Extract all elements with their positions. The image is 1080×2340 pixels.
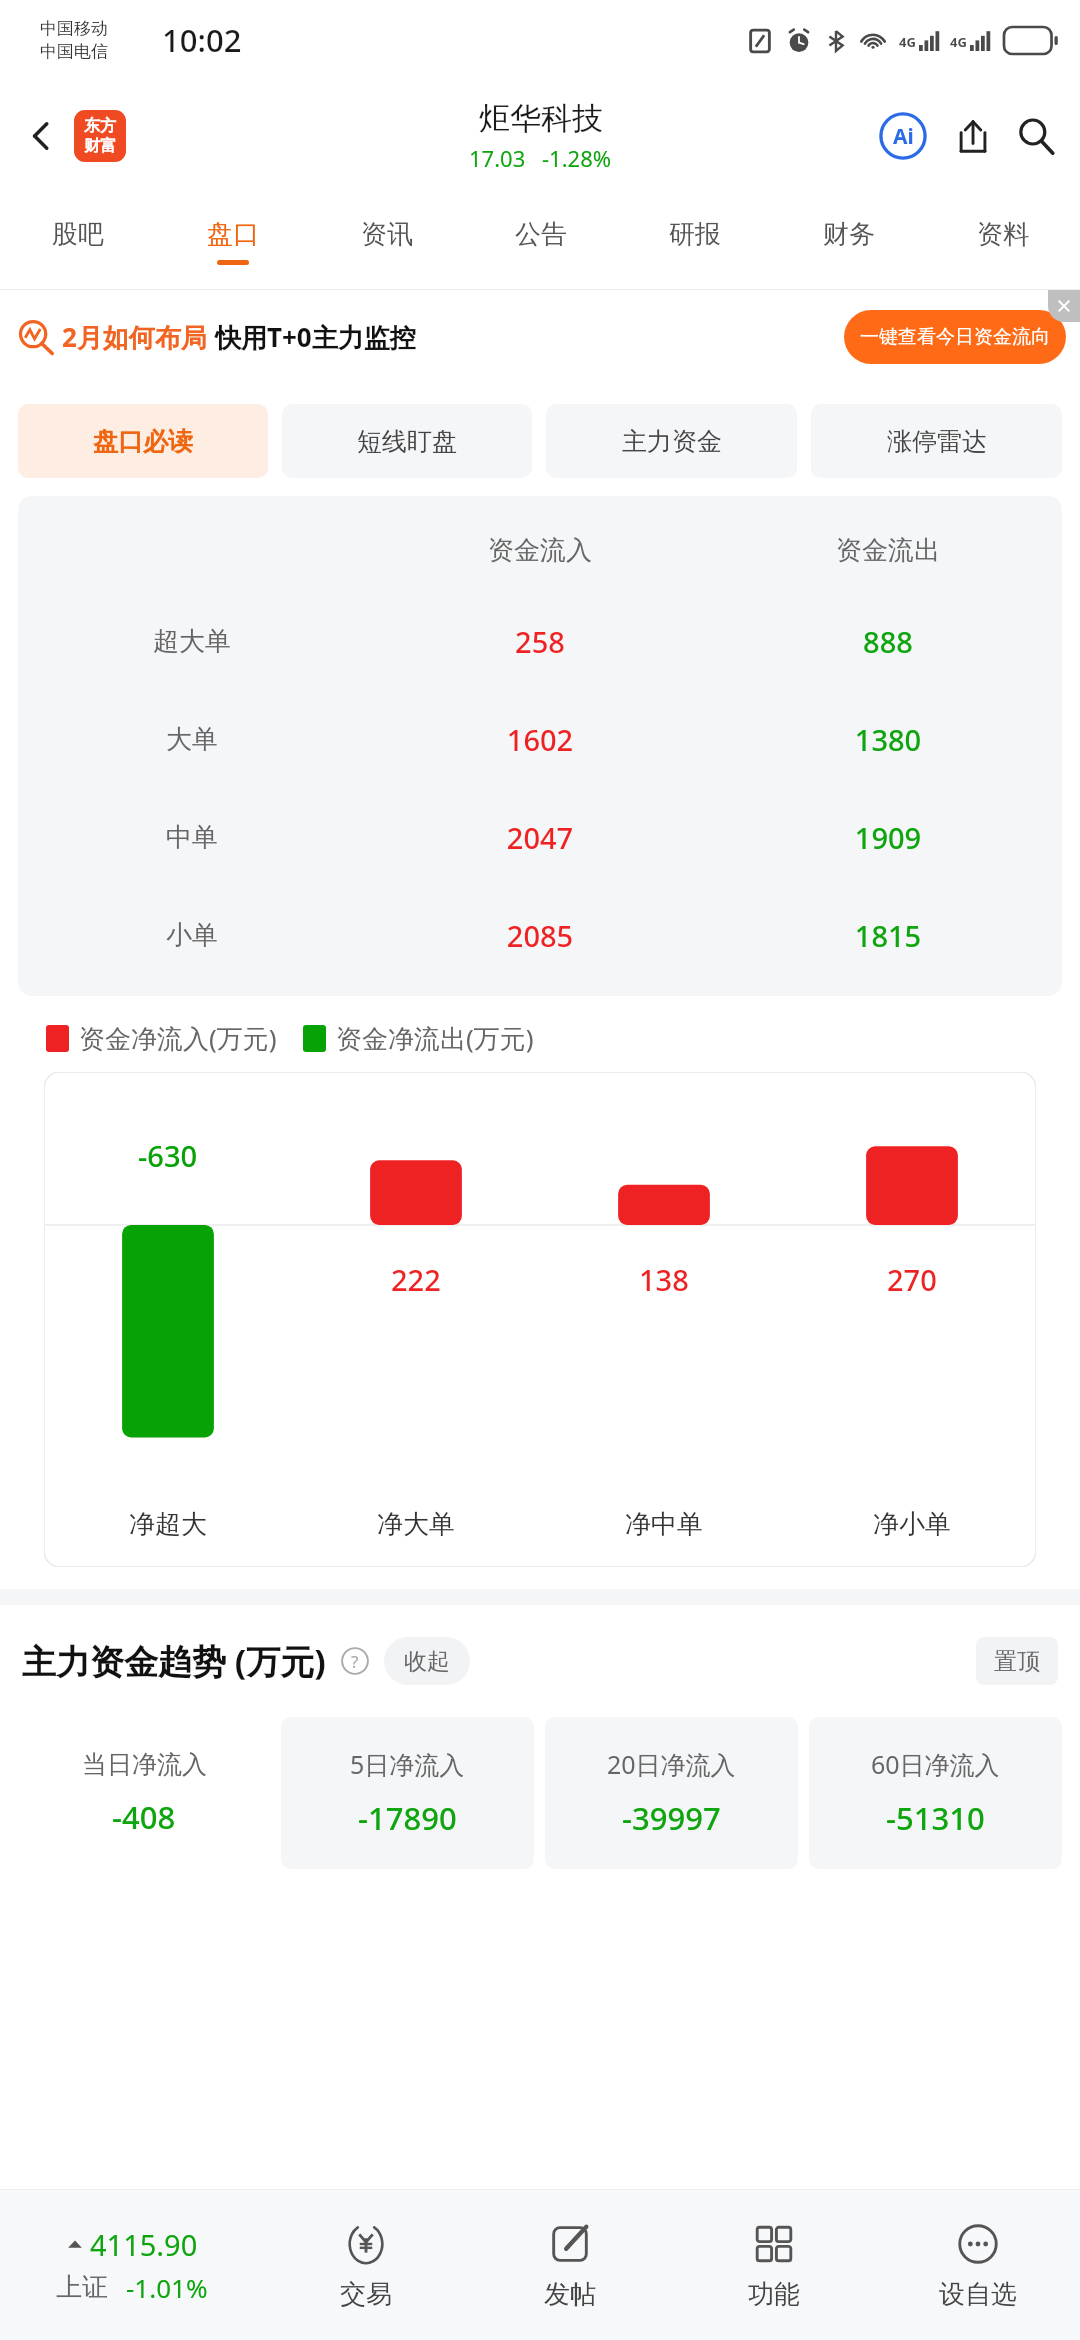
staticText: 设自选 [939,2278,1017,2311]
button[interactable]: 当日净流入 [18,1717,270,1869]
staticText: 资金流入 [366,534,714,567]
staticText: 财务 [823,218,875,251]
button[interactable]: 交易 [264,2190,468,2340]
staticText: 净超大 [44,1508,292,1541]
staticText: 短线盯盘 [357,426,457,457]
staticText: 2085 [366,916,714,955]
button[interactable]: 收起 [384,1637,470,1685]
button[interactable]: 4115.90 [0,2190,264,2340]
staticText: 222 [391,1260,441,1299]
staticText: 小单 [18,919,366,952]
staticText: 公告 [515,218,567,251]
button[interactable]: 置顶 [976,1637,1058,1685]
staticText: 资讯 [361,218,413,251]
staticText: 2月如何布局 [62,319,207,355]
button[interactable]: 帮助 [338,1644,372,1678]
staticText: 盘口 [207,218,259,251]
button[interactable]: 发帖 [468,2190,672,2340]
staticText: 主力资金趋势 (万元) [22,1638,326,1684]
button[interactable]: 设自选 [876,2190,1080,2340]
button[interactable]: 研报 [618,192,772,290]
staticText: 净中单 [540,1508,788,1541]
staticText: 270 [887,1260,937,1299]
button[interactable]: AI助手 [874,107,932,165]
staticText: 资金净流出(万元) [336,1020,534,1056]
staticText: 当日净流入 [82,1749,207,1780]
staticText: 研报 [669,218,721,251]
button[interactable]: 60日净流入 [809,1717,1062,1869]
staticText: 快用T+0主力监控 [215,319,416,355]
staticText: 4115.90 [90,2225,198,2264]
staticText: 1380 [714,720,1062,759]
staticText: 置顶 [994,1647,1040,1676]
staticText: 888 [714,622,1062,661]
staticText: -630 [138,1136,198,1175]
staticText: 上证 [56,2271,108,2304]
staticText: -39997 [622,1797,721,1839]
staticText: 主力资金 [622,426,722,457]
button[interactable]: 分享 [944,108,1000,164]
staticText: 收起 [404,1647,450,1676]
button[interactable]: 20日净流入 [545,1717,798,1869]
button[interactable]: 财务 [772,192,926,290]
button[interactable]: 主力资金 [546,404,797,478]
button[interactable]: 涨停雷达 [811,404,1062,478]
button[interactable]: 搜索 [1008,108,1064,164]
staticText: -408 [112,1796,176,1838]
staticText: 净小单 [788,1508,1036,1541]
button[interactable]: 资讯 [310,192,464,290]
staticText: 发帖 [544,2278,596,2311]
button[interactable]: 一键查看今日资金流向 [844,310,1066,364]
staticText: 一键查看今日资金流向 [860,325,1050,349]
staticText: 炬华科技 [479,99,603,138]
staticText: 涨停雷达 [887,426,987,457]
staticText: 5日净流入 [350,1747,465,1781]
button[interactable]: 功能 [672,2190,876,2340]
staticText: 中单 [18,821,366,854]
button[interactable]: 返回 [12,107,70,165]
button[interactable]: 资料 [926,192,1080,290]
staticText: 功能 [748,2278,800,2311]
button[interactable]: 5日净流入 [281,1717,534,1869]
staticText: 20日净流入 [607,1747,736,1781]
button[interactable]: 短线盯盘 [282,404,532,478]
staticText: -17890 [358,1797,457,1839]
staticText: 资料 [977,218,1029,251]
staticText: 超大单 [18,625,366,658]
staticText: 财富 [84,136,116,156]
staticText: 资金净流入(万元) [79,1020,277,1056]
button[interactable]: 公告 [464,192,618,290]
button[interactable]: 关闭 [1048,290,1080,322]
staticText: 交易 [340,2278,392,2311]
staticText: 258 [366,622,714,661]
staticText: 股吧 [52,218,104,251]
staticText: 1909 [714,818,1062,857]
staticText: 138 [639,1260,689,1299]
button[interactable]: 盘口 [155,192,310,290]
staticText: 4G [899,33,916,51]
button[interactable]: 盘口必读 [18,404,268,478]
staticText: -1.01% [126,2270,208,2305]
staticText: 10:02 [162,19,242,61]
staticText: 大单 [18,723,366,756]
staticText: 中国电信 [40,41,108,62]
staticText: ? [351,1650,359,1673]
staticText: 1602 [366,720,714,759]
staticText: 中国移动 [40,18,108,39]
staticText: 东方 [84,116,116,136]
staticText: 资金流出 [714,534,1062,567]
staticText: 4G [950,33,967,51]
button[interactable]: 股吧 [0,192,155,290]
staticText: Ai [893,122,914,151]
staticText: 盘口必读 [93,426,193,457]
staticText: 净大单 [292,1508,540,1541]
staticText: 17.03 [469,143,526,173]
staticText: -51310 [886,1797,985,1839]
staticText: 1815 [714,916,1062,955]
staticText: 2047 [366,818,714,857]
staticText: -1.28% [542,143,612,173]
button[interactable]: 东方 [74,110,126,162]
staticText: 60日净流入 [871,1747,1000,1781]
